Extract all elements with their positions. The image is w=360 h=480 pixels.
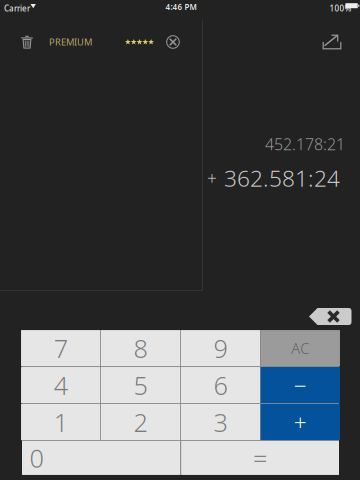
button[interactable]: Close — [158, 27, 188, 57]
button[interactable]: + — [261, 404, 340, 440]
button[interactable]: 3 — [181, 404, 260, 440]
staticText: PREMIUM — [49, 36, 92, 48]
staticText: 4:46 PM — [165, 2, 196, 12]
staticText: Carrier — [4, 3, 30, 14]
staticText: AC — [291, 338, 309, 358]
button[interactable]: 8 — [101, 330, 180, 366]
button[interactable]: Delete — [12, 27, 42, 57]
staticText: 1 — [54, 405, 68, 439]
button[interactable]: Share — [315, 27, 349, 57]
button[interactable]: 6 — [181, 367, 260, 403]
staticText: 5 — [134, 368, 148, 402]
button[interactable]: Rating — [119, 27, 159, 57]
staticText: + — [207, 166, 217, 189]
button[interactable]: PREMIUM — [44, 27, 96, 57]
button[interactable]: 1 — [21, 404, 100, 440]
staticText: 362.581:24 — [224, 163, 340, 193]
staticText: + — [294, 407, 307, 437]
button[interactable]: 7 — [21, 330, 100, 366]
staticText: 8 — [134, 331, 148, 365]
button[interactable]: 4 — [21, 367, 100, 403]
staticText: 100% — [329, 3, 351, 14]
staticText: 9 — [213, 331, 227, 365]
button[interactable]: 0 — [22, 441, 180, 475]
button[interactable]: = — [181, 441, 339, 475]
staticText: 4 — [54, 368, 68, 402]
staticText: 6 — [213, 368, 227, 402]
staticText: 7 — [54, 331, 68, 365]
button[interactable]: Delete — [309, 308, 352, 325]
button[interactable]: 9 — [181, 330, 260, 366]
button[interactable]: AC — [261, 330, 340, 366]
button[interactable]: − — [261, 367, 340, 403]
staticText: = — [253, 441, 267, 475]
staticText: 2 — [134, 405, 148, 439]
button[interactable]: 2 — [101, 404, 180, 440]
staticText: − — [294, 370, 307, 400]
staticText: 0 — [29, 441, 43, 475]
button[interactable]: 5 — [101, 367, 180, 403]
staticText: 452.178:21 — [265, 133, 345, 155]
staticText: 3 — [213, 405, 227, 439]
